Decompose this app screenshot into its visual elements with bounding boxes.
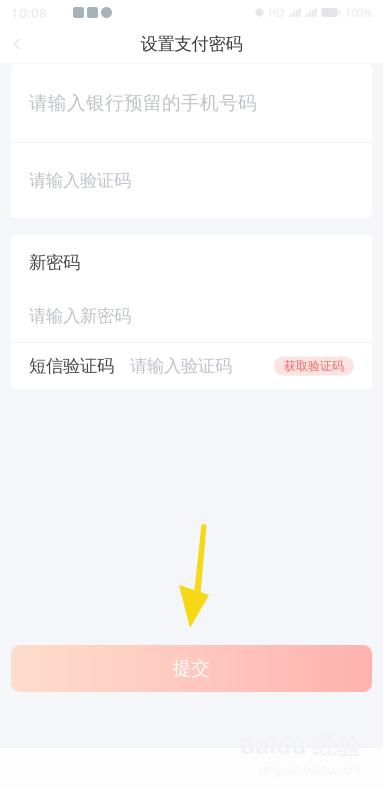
staticText: 请输入新密码 bbox=[29, 305, 131, 327]
button[interactable]: 请输入银行预留的手机号码 bbox=[11, 64, 372, 142]
staticText: 100% bbox=[345, 5, 372, 20]
staticText: 短信验证码 bbox=[29, 355, 114, 377]
staticText: 设置支付密码 bbox=[140, 33, 242, 55]
button[interactable]: 获取验证码 bbox=[274, 356, 354, 375]
staticText: 请输入验证码 bbox=[29, 170, 131, 191]
button[interactable]: 请输入新密码 bbox=[11, 290, 372, 342]
staticText: Baidu 经验 bbox=[239, 729, 361, 761]
staticText: 请输入验证码 bbox=[130, 355, 232, 377]
staticText: 请输入银行预留的手机号码 bbox=[29, 91, 257, 114]
button[interactable]: 请输入验证码 bbox=[11, 143, 372, 218]
button[interactable]: 提交 bbox=[11, 645, 372, 692]
staticText: 提交 bbox=[172, 657, 210, 680]
staticText: 获取验证码 bbox=[284, 359, 344, 373]
staticText: 10:08 bbox=[11, 4, 47, 21]
staticText: jingyan.baidu.com bbox=[260, 761, 361, 777]
staticText: 新密码 bbox=[29, 252, 80, 273]
staticText: HD bbox=[268, 5, 284, 20]
